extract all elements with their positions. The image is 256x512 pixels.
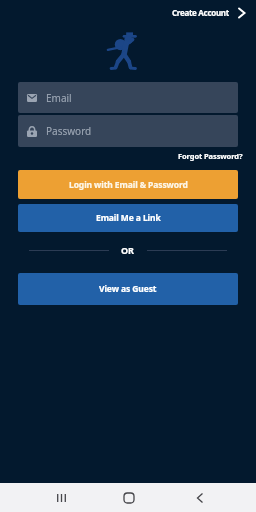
staticText: Email xyxy=(46,91,72,105)
button[interactable]: Password xyxy=(18,115,238,147)
staticText: Password xyxy=(46,124,92,138)
staticText: Email Me a Link xyxy=(96,212,161,224)
button[interactable]: View as Guest xyxy=(18,273,238,305)
button[interactable]: Forgot Password? xyxy=(178,151,243,161)
staticText: Create Account xyxy=(172,7,229,18)
staticText: OR xyxy=(121,244,135,256)
button[interactable] xyxy=(186,483,214,512)
staticText: Login with Email & Password xyxy=(69,179,188,191)
staticText: Forgot Password? xyxy=(178,151,243,161)
button[interactable] xyxy=(47,483,75,512)
button[interactable]: Create Account xyxy=(172,7,245,18)
staticText: View as Guest xyxy=(99,283,157,295)
button[interactable]: Email Me a Link xyxy=(18,204,238,232)
button[interactable] xyxy=(115,483,143,512)
button[interactable]: Email xyxy=(18,82,238,113)
button[interactable]: Login with Email & Password xyxy=(18,170,238,199)
